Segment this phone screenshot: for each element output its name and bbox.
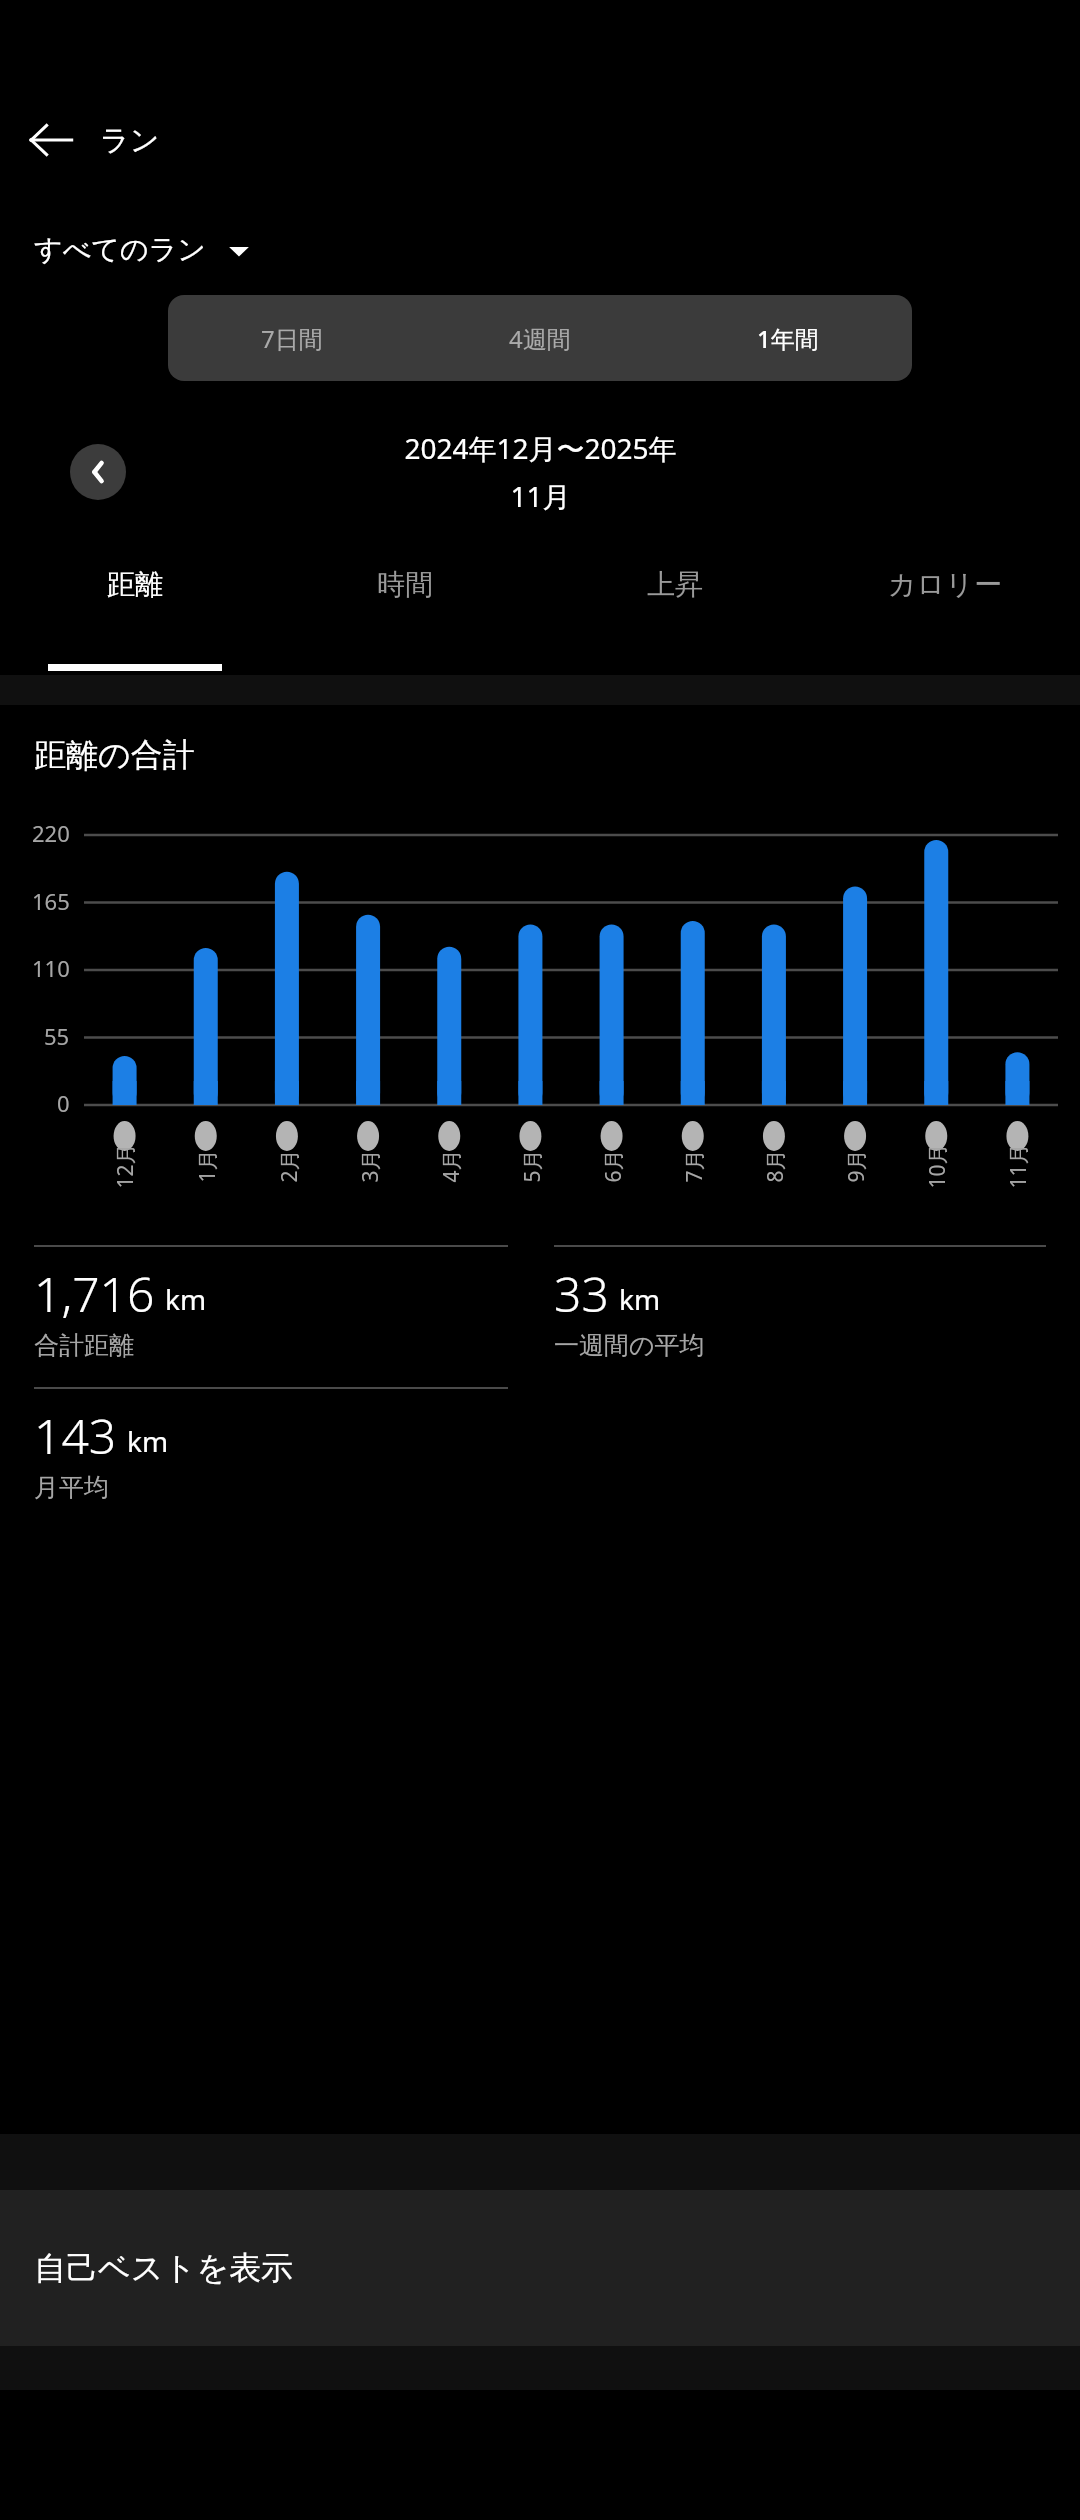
staticText: km (127, 1422, 169, 1460)
staticText: 55 (44, 1021, 70, 1051)
staticText: 7月 (679, 1148, 708, 1182)
staticText: 4月 (436, 1148, 465, 1182)
staticText: 12月 (110, 1142, 139, 1188)
staticText: 2024年12月〜2025年 11月 (404, 429, 677, 515)
staticText: 距離 (107, 567, 163, 602)
button[interactable]: 自己ベストを表示 (0, 2190, 1080, 2346)
staticText: 3月 (355, 1148, 384, 1182)
staticText: 11月 (1003, 1142, 1032, 1188)
staticText: 143 (34, 1403, 117, 1468)
button[interactable]: 上昇 (540, 543, 810, 675)
staticText: 時間 (377, 567, 433, 602)
staticText: 10月 (922, 1142, 951, 1188)
staticText: 220 (32, 818, 70, 848)
staticText: 6月 (598, 1148, 627, 1182)
staticText: 自己ベストを表示 (34, 2248, 293, 2288)
staticText: すべてのラン (34, 232, 206, 267)
button[interactable]: 7日間 (168, 295, 416, 381)
button[interactable]: Back (14, 103, 88, 177)
button[interactable]: 4週間 (416, 295, 664, 381)
staticText: 110 (32, 953, 70, 983)
staticText: 8月 (760, 1148, 789, 1182)
staticText: 月平均 (34, 1472, 109, 1503)
button[interactable]: カロリー (810, 543, 1080, 675)
staticText: ラン (100, 122, 160, 159)
staticText: km (165, 1280, 207, 1318)
staticText: 4週間 (509, 322, 571, 355)
staticText: km (619, 1280, 661, 1318)
staticText: 165 (32, 886, 70, 916)
button[interactable]: Previous period (70, 444, 126, 500)
button[interactable]: 1年間 (664, 295, 912, 381)
staticText: 0 (57, 1088, 70, 1118)
staticText: 上昇 (647, 567, 703, 602)
staticText: 7日間 (261, 322, 323, 355)
staticText: 2月 (274, 1148, 303, 1182)
staticText: 5月 (517, 1148, 546, 1182)
staticText: 距離の合計 (34, 735, 195, 775)
staticText: 1年間 (757, 322, 819, 355)
button[interactable]: すべてのラン (34, 232, 250, 267)
button[interactable]: 時間 (270, 543, 540, 675)
staticText: 33 (554, 1261, 609, 1326)
staticText: カロリー (888, 567, 1002, 602)
staticText: 9月 (841, 1148, 870, 1182)
button[interactable]: 距離 (0, 543, 270, 675)
staticText: 合計距離 (34, 1330, 134, 1361)
staticText: 1月 (192, 1148, 221, 1182)
staticText: 1,716 (34, 1261, 155, 1326)
staticText: 一週間の平均 (554, 1330, 705, 1361)
